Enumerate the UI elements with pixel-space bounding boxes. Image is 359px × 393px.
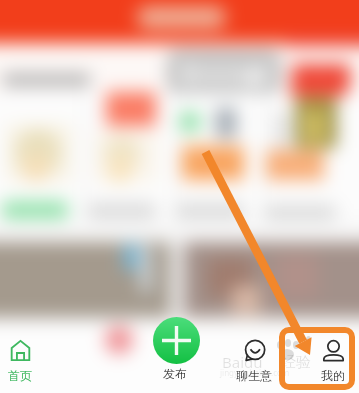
staticText: 首页	[8, 368, 32, 383]
staticText: 发布	[163, 366, 187, 381]
staticText: 聊生意	[236, 368, 272, 383]
button[interactable]: 首页	[0, 334, 58, 386]
staticText: jingyan.baidu.com	[220, 367, 290, 378]
staticText: Baidu	[222, 352, 263, 372]
button[interactable]: 我的	[295, 334, 359, 386]
button[interactable]: 发布	[153, 317, 200, 364]
staticText: 经验	[281, 353, 311, 372]
staticText: 我的	[321, 368, 345, 383]
button[interactable]: 聊生意	[216, 334, 292, 386]
